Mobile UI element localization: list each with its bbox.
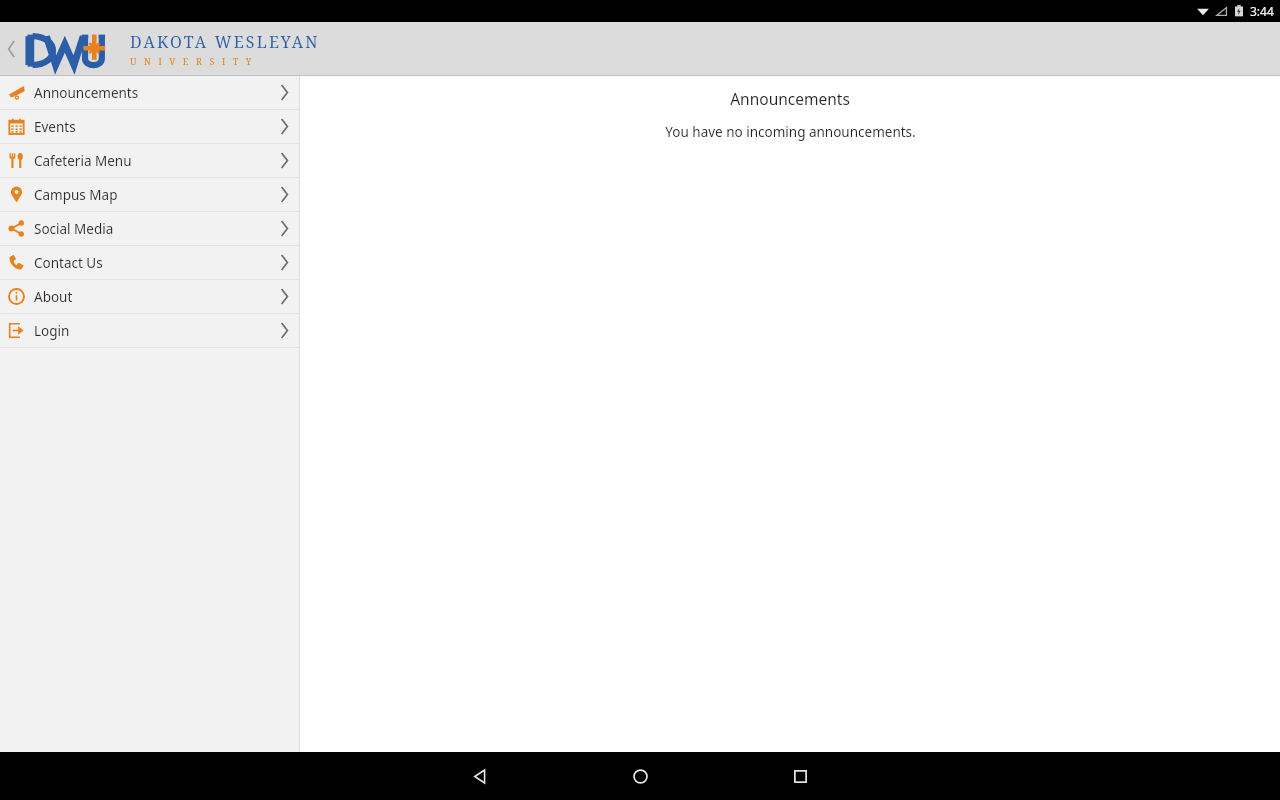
button[interactable]: Events [0,110,299,144]
staticText: 3:44 [1250,3,1274,19]
button[interactable]: About [0,280,299,314]
button[interactable]: Announcements [0,76,299,110]
staticText: Contact Us [34,254,103,272]
staticText: Social Media [34,220,114,238]
button[interactable]: Social Media [0,212,299,246]
staticText: Login [34,322,70,340]
staticText: U N I V E R S I T Y [130,55,255,67]
staticText: DAKOTA WESLEYAN [130,31,320,53]
staticText: Events [34,118,76,136]
staticText: About [34,288,73,306]
button[interactable]: Contact Us [0,246,299,280]
staticText: Campus Map [34,186,118,204]
button[interactable]: Back [420,752,540,800]
staticText: Announcements [730,88,850,109]
staticText: You have no incoming announcements. [665,123,916,141]
button[interactable]: Login [0,314,299,348]
staticText: Announcements [34,84,139,102]
button[interactable]: Cafeteria Menu [0,144,299,178]
button[interactable]: Campus Map [0,178,299,212]
staticText: Cafeteria Menu [34,152,132,170]
button[interactable]: Recent apps [740,752,860,800]
button[interactable]: Back [0,22,22,76]
button[interactable]: Home [580,752,700,800]
